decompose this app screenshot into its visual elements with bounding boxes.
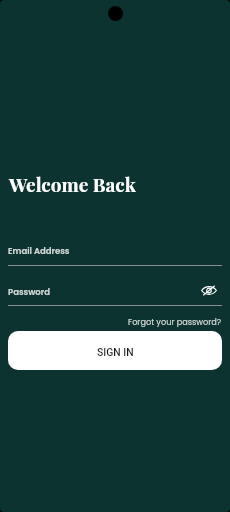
- staticText: SIGN IN: [97, 346, 134, 358]
- staticText: Welcome Back: [9, 171, 136, 196]
- staticText: Email Address: [8, 245, 70, 257]
- button[interactable]: Password: [8, 281, 222, 306]
- button[interactable]: Forgot your password?: [128, 316, 222, 327]
- staticText: Password: [8, 286, 50, 298]
- button[interactable]: Email Address: [8, 240, 222, 266]
- button[interactable]: Show password: [198, 280, 219, 301]
- button[interactable]: SIGN IN: [8, 331, 222, 370]
